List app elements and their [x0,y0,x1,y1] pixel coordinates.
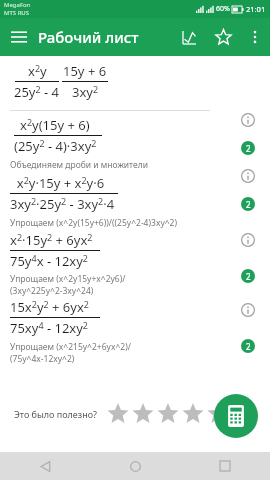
staticText: Упрощаем (x^2y15y+x^2y6)/ [10,273,126,285]
button[interactable]: Graph [172,20,206,54]
button[interactable]: Info [238,300,258,320]
staticText: 25y2 - 4 [14,83,60,101]
button[interactable]: Rate [205,401,230,426]
button[interactable]: Rate [180,401,205,426]
button[interactable]: Rate [105,401,130,426]
staticText: 75xy4 - 12xy2 [10,319,89,337]
staticText: 3xy2 [72,83,99,101]
staticText: (75y^4x-12xy^2) [10,353,75,365]
button[interactable]: Recents [180,452,270,480]
staticText: 75y4x - 12xy2 [10,252,89,270]
staticText: 15x2y2 + 6yx2 [10,298,89,316]
staticText: 2 [246,199,251,210]
button[interactable]: Back [0,452,90,480]
button[interactable]: Info [238,166,258,186]
staticText: 3xy2·25y2 - 3xy2·4 [10,195,115,213]
staticText: (3xy^225y^2-3xy^24) [10,285,94,297]
staticText: 2 [246,341,251,352]
button[interactable]: Menu [0,18,38,56]
staticText: x2y(15y + 6) [20,116,90,134]
staticText: Упрощаем (x^2y(15y+6))/((25y^2-4)3xy^2) [10,217,177,229]
staticText: 2 [246,271,251,282]
staticText: 15y + 6 [63,62,107,80]
staticText: 60% [216,4,230,14]
button[interactable]: Info [238,110,258,130]
button[interactable]: Steps [238,194,258,214]
button[interactable]: Calculator [214,394,258,438]
staticText: (25y2 - 4)·3xy2 [14,137,97,155]
button[interactable]: Rate [155,401,180,426]
button[interactable]: Steps [238,138,258,158]
staticText: 21:01 [246,4,266,14]
staticText: Объединяем дроби и множители [10,159,148,171]
staticText: x2·15y2 + 6yx2 [10,231,93,249]
button[interactable]: Steps [238,266,258,286]
staticText: Это было полезно? [14,408,97,420]
staticText: MegaFon [4,1,31,9]
staticText: Упрощаем (x^215y^2+6yx^2)/ [10,341,131,353]
button[interactable]: More options [240,22,270,52]
staticText: x2y [28,62,47,80]
staticText: x2y·15y + x2y·6 [10,174,105,192]
button[interactable]: Info [238,230,258,250]
button[interactable]: Home [90,452,180,480]
staticText: 2 [246,143,251,154]
staticText: MTS RUS [4,9,30,17]
button[interactable]: Steps [238,336,258,356]
button[interactable]: Rate [130,401,155,426]
button[interactable]: Favorite [206,20,240,54]
staticText: Рабочий лист [38,27,172,47]
